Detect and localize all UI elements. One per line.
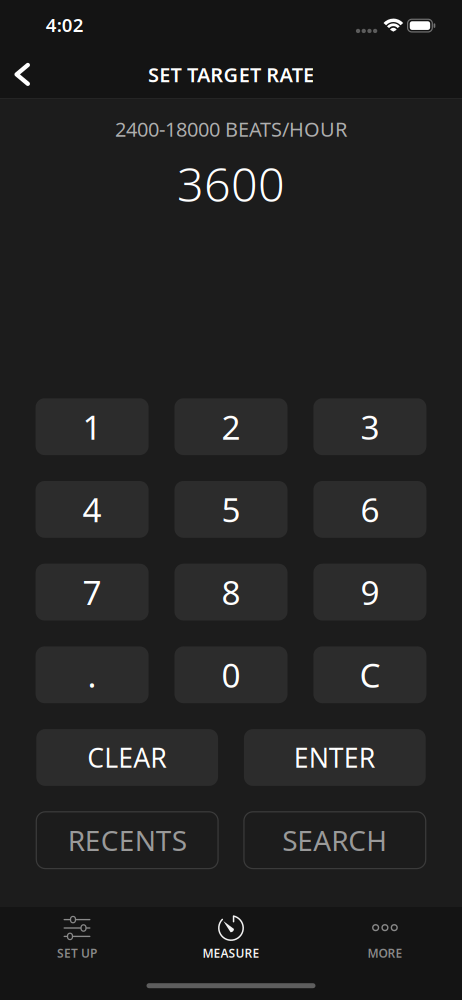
staticText: 3600 (177, 153, 285, 215)
button[interactable]: 5 (174, 481, 287, 538)
staticText: SET TARGET RATE (148, 61, 314, 88)
button[interactable]: SEARCH (244, 812, 426, 869)
button[interactable]: 9 (313, 564, 426, 620)
staticText: 2 (221, 405, 240, 449)
button[interactable]: MEASURE (154, 915, 308, 967)
button[interactable]: 2 (174, 398, 287, 455)
staticText: RECENTS (68, 822, 187, 859)
staticText: C (359, 653, 380, 697)
button[interactable]: 7 (36, 564, 149, 620)
button[interactable]: . (36, 646, 149, 703)
staticText: 6 (360, 487, 379, 532)
staticText: ENTER (294, 740, 376, 775)
staticText: . (88, 653, 97, 697)
staticText: SEARCH (282, 822, 387, 859)
staticText: CLEAR (87, 740, 167, 775)
staticText: 2400-18000 BEATS/HOUR (115, 116, 347, 142)
button[interactable]: 4 (36, 481, 149, 538)
button[interactable]: 1 (36, 398, 149, 455)
staticText: MORE (367, 945, 402, 961)
staticText: 4 (83, 487, 102, 532)
button[interactable]: 3 (313, 398, 426, 455)
button[interactable]: 8 (174, 564, 287, 620)
button[interactable]: 0 (174, 646, 287, 703)
staticText: 8 (221, 570, 240, 614)
staticText: SET UP (57, 945, 97, 961)
button[interactable]: RECENTS (36, 812, 218, 869)
staticText: MEASURE (202, 945, 259, 961)
button[interactable]: Back (0, 49, 46, 99)
staticText: 7 (83, 570, 102, 614)
button[interactable]: SET UP (0, 915, 154, 967)
staticText: 5 (221, 487, 240, 532)
staticText: 3 (360, 405, 379, 449)
button[interactable]: MORE (308, 915, 462, 967)
button[interactable]: CLEAR (36, 729, 218, 786)
staticText: 9 (360, 570, 379, 614)
button[interactable]: C (313, 646, 426, 703)
staticText: 1 (83, 405, 102, 449)
staticText: 4:02 (46, 12, 84, 37)
staticText: 0 (221, 653, 240, 697)
button[interactable]: 6 (313, 481, 426, 538)
button[interactable]: ENTER (244, 729, 426, 786)
